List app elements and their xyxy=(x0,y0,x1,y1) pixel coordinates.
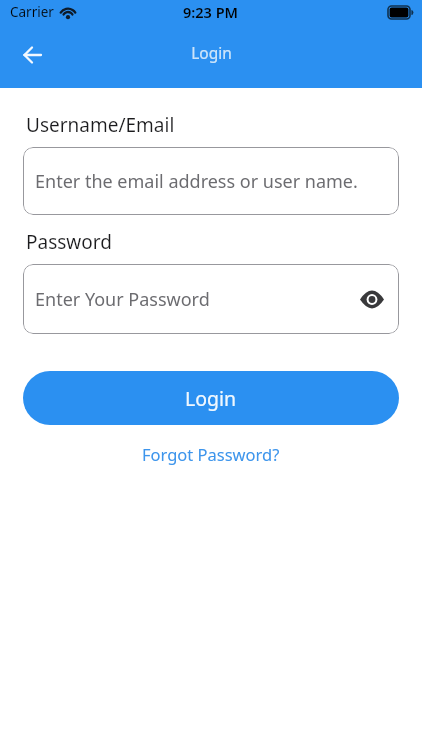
staticText: Forgot Password? xyxy=(142,443,280,465)
staticText: 9:23 PM xyxy=(183,2,239,22)
button[interactable]: Login xyxy=(23,371,399,425)
button[interactable]: Enter Your Password xyxy=(23,264,399,334)
button[interactable] xyxy=(356,283,388,315)
staticText: Login xyxy=(185,385,237,412)
staticText: Password xyxy=(26,229,112,255)
button[interactable]: Forgot Password? xyxy=(138,441,284,467)
staticText: Enter the email address or user name. xyxy=(35,169,358,194)
staticText: Enter Your Password xyxy=(35,287,210,312)
button[interactable] xyxy=(12,35,52,75)
staticText: Username/Email xyxy=(26,112,175,138)
button[interactable]: Enter the email address or user name. xyxy=(23,147,399,215)
staticText: Carrier xyxy=(10,3,54,21)
staticText: Login xyxy=(191,42,232,63)
